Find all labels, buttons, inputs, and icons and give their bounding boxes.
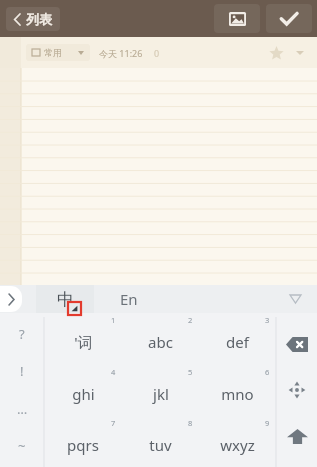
button[interactable]: 4 — [44, 365, 122, 416]
button[interactable]: ! — [0, 354, 44, 388]
staticText: 3 — [265, 315, 270, 325]
button[interactable]: 6 — [199, 365, 276, 416]
button[interactable]: En — [94, 285, 164, 313]
staticText: jkl — [153, 384, 169, 404]
button[interactable]: Expand — [0, 286, 22, 312]
staticText: … — [17, 400, 28, 418]
staticText: ghi — [72, 384, 95, 404]
button[interactable]: Insert image — [214, 4, 260, 33]
staticText: ! — [20, 362, 24, 380]
staticText: 中 — [57, 289, 74, 310]
button[interactable]: ~ — [0, 429, 44, 463]
staticText: 9 — [265, 418, 270, 428]
button[interactable]: 5 — [122, 365, 199, 416]
button[interactable]: 3 — [199, 313, 276, 365]
button[interactable]: 常用 — [26, 44, 90, 61]
button[interactable]: Done — [266, 4, 312, 33]
staticText: pqrs — [67, 435, 99, 455]
button[interactable]: Arrow keys — [280, 375, 314, 405]
staticText: wxyz — [220, 435, 255, 455]
staticText: 6 — [265, 367, 270, 377]
button[interactable]: … — [0, 392, 44, 426]
staticText: 4 — [111, 367, 116, 377]
button[interactable]: Backspace — [280, 329, 314, 359]
button[interactable]: 1 — [44, 313, 122, 365]
staticText: 5 — [188, 367, 193, 377]
staticText: abc — [148, 332, 173, 352]
button[interactable]: More options — [291, 44, 309, 62]
button[interactable]: 7 — [44, 416, 122, 467]
staticText: 今天 11:26 — [99, 47, 143, 59]
staticText: 列表 — [26, 11, 52, 27]
button[interactable]: 列表 — [6, 7, 60, 31]
staticText: En — [120, 289, 138, 309]
button[interactable]: 2 — [122, 313, 199, 365]
button[interactable]: 9 — [199, 416, 276, 467]
staticText: ? — [19, 325, 25, 343]
button[interactable]: Favorite — [265, 42, 287, 64]
button[interactable]: Keyboard options — [285, 289, 305, 309]
staticText: 2 — [188, 315, 193, 325]
button[interactable]: 8 — [122, 416, 199, 467]
staticText: 7 — [111, 418, 116, 428]
staticText: mno — [221, 384, 254, 404]
staticText: 常用 — [44, 47, 62, 58]
button[interactable]: Shift — [280, 421, 314, 451]
staticText: def — [226, 332, 249, 352]
button[interactable]: ? — [0, 317, 44, 351]
staticText: 1 — [111, 315, 116, 325]
staticText: 8 — [188, 418, 193, 428]
staticText: '词 — [74, 332, 93, 352]
staticText: 0 — [154, 47, 160, 59]
staticText: tuv — [149, 435, 172, 455]
staticText: ~ — [18, 437, 26, 455]
button[interactable]: 中 — [36, 285, 94, 313]
